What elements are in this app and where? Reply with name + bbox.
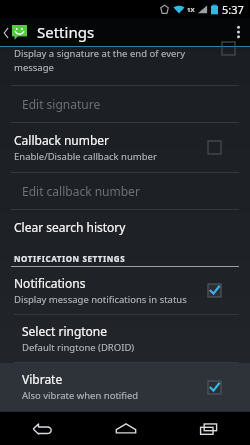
button[interactable]: Unchecked xyxy=(220,40,237,57)
button[interactable]: Checked xyxy=(206,282,223,299)
button[interactable]: Edit signature xyxy=(0,86,250,122)
staticText: Edit signature xyxy=(22,96,101,112)
staticText: Edit callback number xyxy=(22,183,140,199)
staticText: NOTIFICATION SETTINGS xyxy=(14,253,126,264)
staticText: Enable/Disable callback number xyxy=(14,150,157,163)
staticText: Display message notifications in status xyxy=(14,293,187,306)
button[interactable]: Clear search history xyxy=(0,210,250,244)
staticText: Select ringtone xyxy=(22,323,108,339)
staticText: message xyxy=(14,61,54,74)
staticText: Display a signature at the end of every xyxy=(14,47,186,60)
staticText: 1X xyxy=(187,6,195,14)
button[interactable]: Home xyxy=(84,412,167,445)
button[interactable]: Back xyxy=(0,412,84,445)
staticText: Vibrate xyxy=(22,371,63,387)
button[interactable]: Navigate up xyxy=(0,25,29,40)
button[interactable]: Select ringtone xyxy=(0,315,250,362)
staticText: Notifications xyxy=(14,275,86,291)
staticText: Clear search history xyxy=(14,219,126,235)
staticText: Callback number xyxy=(14,132,110,148)
staticText: Default ringtone (DROID) xyxy=(22,341,135,354)
staticText: Also vibrate when notified xyxy=(22,389,139,402)
button[interactable]: Checked xyxy=(206,379,223,396)
button[interactable]: Edit callback number xyxy=(0,173,250,209)
staticText: 5:37 xyxy=(222,2,244,17)
button[interactable]: Unchecked xyxy=(206,139,223,156)
button[interactable]: Recent apps xyxy=(167,412,250,445)
button[interactable]: Display a signature at the end of every xyxy=(0,47,250,79)
button[interactable]: Callback number xyxy=(0,123,250,172)
button[interactable]: Vibrate xyxy=(0,363,250,411)
button[interactable]: More options xyxy=(226,18,250,46)
button[interactable]: Notifications xyxy=(0,267,250,314)
staticText: Settings xyxy=(37,22,95,42)
